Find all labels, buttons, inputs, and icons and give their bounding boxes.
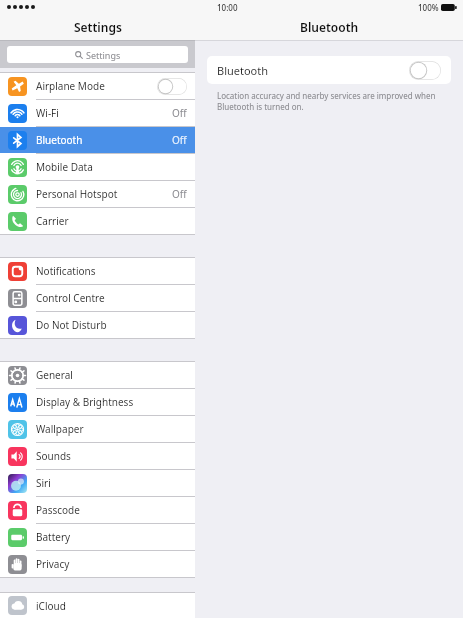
staticText: 100% [418, 2, 439, 13]
staticText: Sounds [36, 449, 71, 463]
staticText: Settings [86, 49, 121, 61]
button[interactable]: Carrier [0, 208, 195, 234]
staticText: Settings [74, 19, 122, 35]
staticText: Off [172, 133, 187, 147]
staticText: Personal Hotspot [36, 187, 118, 201]
staticText: Carrier [36, 214, 69, 228]
button[interactable]: Toggle switch, off [157, 78, 187, 95]
button[interactable]: Mobile Data [0, 154, 195, 180]
staticText: Location accuracy and nearby services ar… [217, 90, 436, 101]
staticText: Passcode [36, 503, 80, 517]
staticText: Battery [36, 530, 71, 544]
staticText: Off [172, 187, 187, 201]
button[interactable]: iCloud [0, 593, 195, 618]
button[interactable]: Do Not Disturb [0, 312, 195, 338]
staticText: Bluetooth [36, 133, 83, 147]
button[interactable]: Siri [0, 470, 195, 496]
staticText: General [36, 368, 73, 382]
staticText: Bluetooth [217, 63, 269, 78]
staticText: 10:00 [217, 2, 238, 13]
staticText: Notifications [36, 264, 96, 278]
staticText: Wi-Fi [36, 106, 59, 120]
button[interactable]: Sounds [0, 443, 195, 469]
button[interactable]: Display & Brightness [0, 389, 195, 415]
button[interactable]: Privacy [0, 551, 195, 577]
staticText: Bluetooth is turned on. [217, 101, 304, 112]
staticText: Off [172, 106, 187, 120]
staticText: Control Centre [36, 291, 105, 305]
button[interactable]: Airplane Mode [0, 73, 195, 99]
staticText: Privacy [36, 557, 70, 571]
button[interactable]: Settings [7, 46, 188, 63]
staticText: Airplane Mode [36, 79, 105, 93]
staticText: Wallpaper [36, 422, 84, 436]
staticText: Display & Brightness [36, 395, 134, 409]
button[interactable]: Passcode [0, 497, 195, 523]
staticText: Mobile Data [36, 160, 93, 174]
button[interactable]: Toggle switch, off [409, 61, 441, 80]
button[interactable]: Bluetooth [0, 127, 195, 153]
staticText: Do Not Disturb [36, 318, 107, 332]
staticText: Siri [36, 476, 51, 490]
button[interactable]: Wallpaper [0, 416, 195, 442]
button[interactable]: Wi-Fi [0, 100, 195, 126]
button[interactable]: General [0, 362, 195, 388]
staticText: iCloud [36, 599, 66, 613]
button[interactable]: Personal Hotspot [0, 181, 195, 207]
staticText: Bluetooth [300, 19, 359, 35]
button[interactable]: Bluetooth [207, 56, 451, 84]
button[interactable]: Notifications [0, 258, 195, 284]
button[interactable]: Battery [0, 524, 195, 550]
button[interactable]: Control Centre [0, 285, 195, 311]
